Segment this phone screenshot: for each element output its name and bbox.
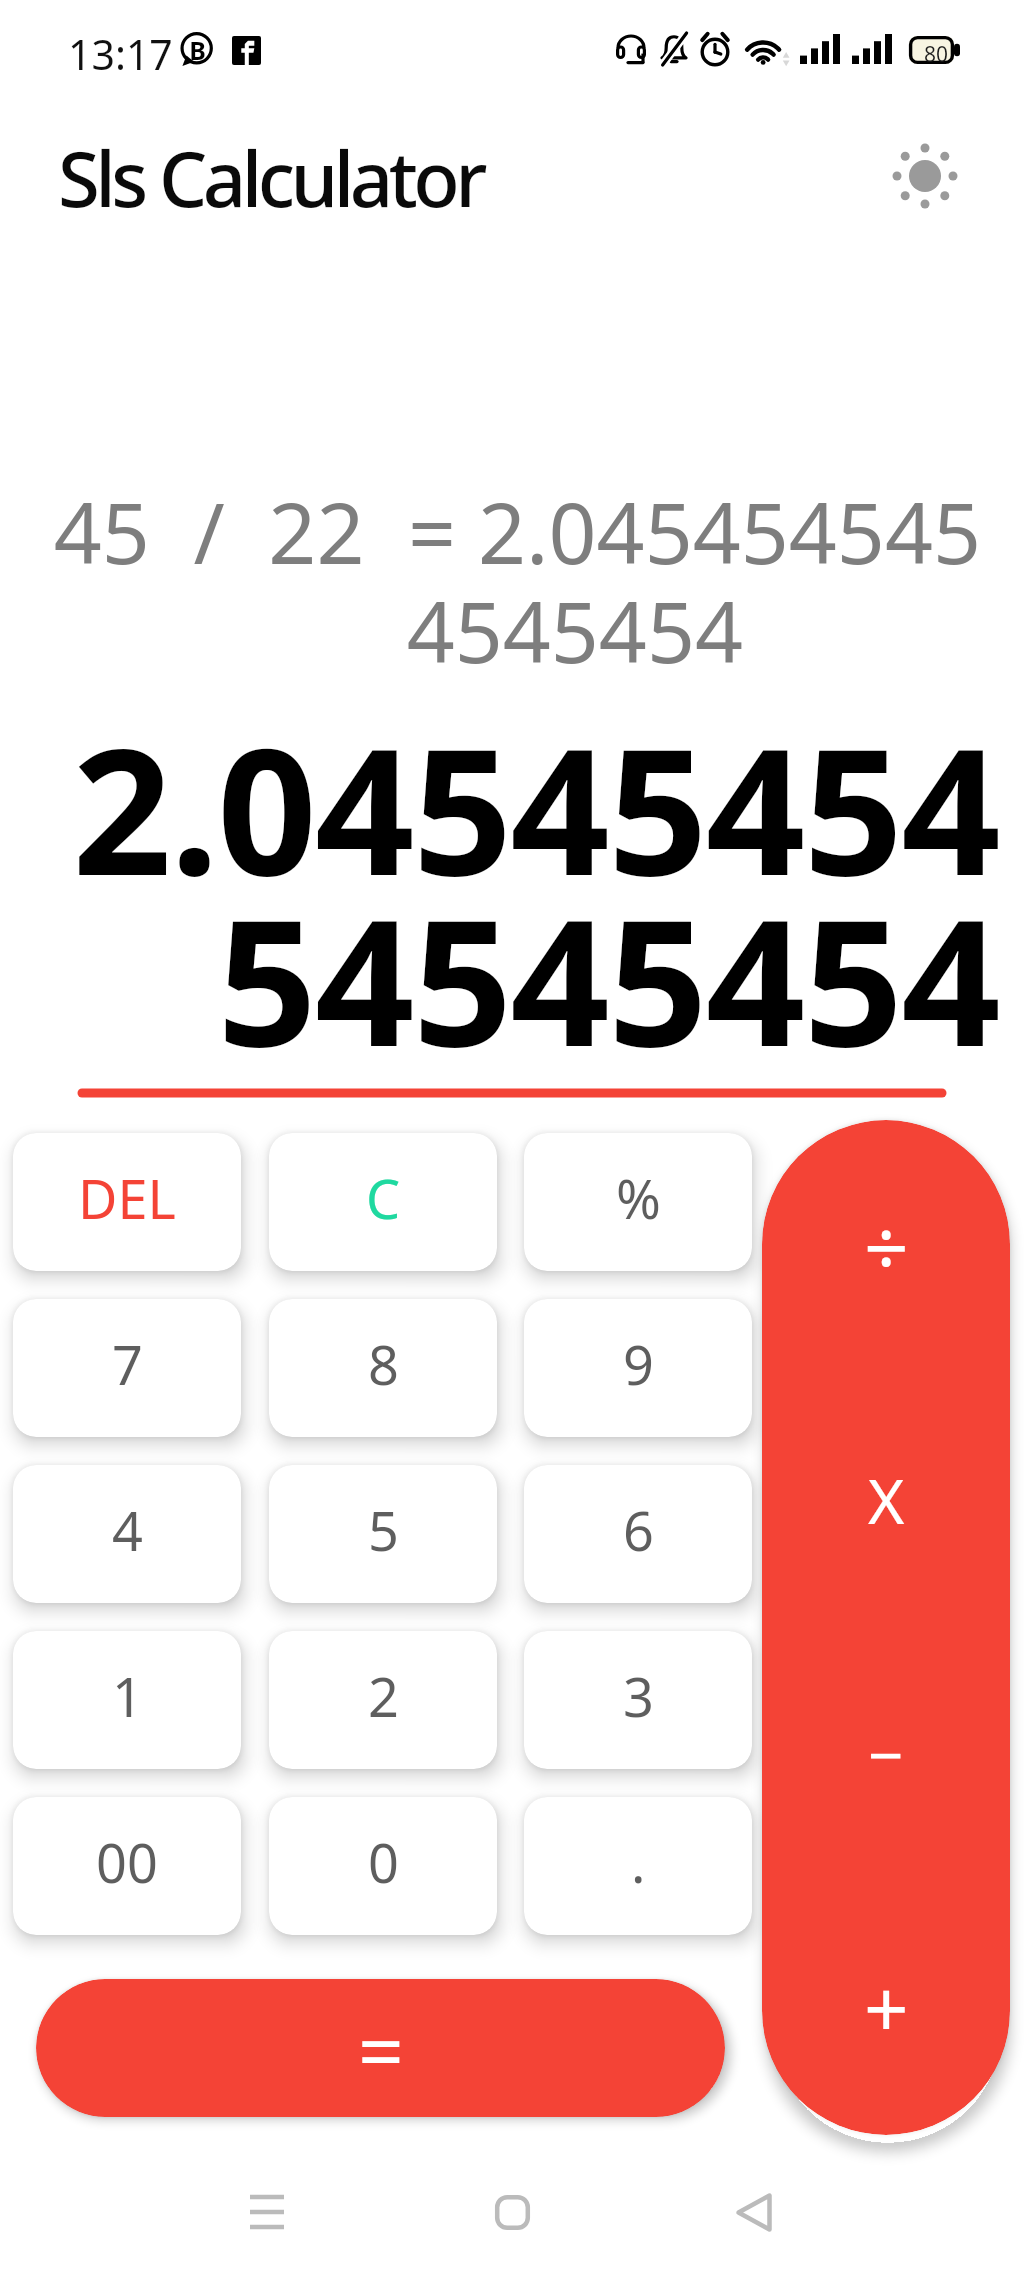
button[interactable]: 3 <box>524 1631 752 1769</box>
staticText: 5 <box>368 1493 399 1567</box>
button[interactable]: DEL <box>13 1133 241 1271</box>
staticText: 45 / 22 = 2.045454545 <box>4 474 981 588</box>
button[interactable]: − <box>762 1627 1010 1881</box>
button[interactable]: % <box>524 1133 752 1271</box>
staticText: 0 <box>368 1825 399 1899</box>
button[interactable]: 9 <box>524 1299 752 1437</box>
staticText: 80 <box>919 40 953 69</box>
button[interactable]: 8 <box>269 1299 497 1437</box>
button[interactable]: 5 <box>269 1465 497 1603</box>
staticText: 6 <box>623 1493 654 1567</box>
staticText: . <box>631 1825 646 1899</box>
staticText: B <box>182 33 213 67</box>
staticText: 54545454 <box>0 860 999 1097</box>
staticText: 00 <box>96 1825 158 1899</box>
button[interactable]: 0 <box>269 1797 497 1935</box>
button[interactable]: 7 <box>13 1299 241 1437</box>
button[interactable]: + <box>762 1881 1010 2135</box>
button[interactable]: Home <box>464 2164 560 2260</box>
staticText: C <box>366 1161 401 1235</box>
staticText: DEL <box>78 1161 176 1235</box>
button[interactable]: ÷ <box>762 1120 1010 1373</box>
button[interactable]: 1 <box>13 1631 241 1769</box>
staticText: % <box>616 1161 661 1235</box>
button[interactable]: 00 <box>13 1797 241 1935</box>
staticText: 9 <box>623 1327 654 1401</box>
staticText: + <box>864 1955 909 2061</box>
staticText: 4545454 <box>2 573 743 687</box>
button[interactable]: 4 <box>13 1465 241 1603</box>
staticText: 2 <box>368 1659 399 1733</box>
button[interactable]: = <box>36 1979 725 2117</box>
staticText: 2.04545454 <box>0 689 999 926</box>
staticText: = <box>358 1994 404 2103</box>
staticText: − <box>868 1712 904 1796</box>
staticText: 7 <box>112 1327 143 1401</box>
staticText: 1 <box>112 1659 143 1733</box>
button[interactable]: 6 <box>524 1465 752 1603</box>
staticText: 3 <box>623 1659 654 1733</box>
staticText: Sls Calculator <box>58 126 483 230</box>
button[interactable]: Recent apps <box>219 2164 315 2260</box>
staticText: 4 <box>112 1493 143 1567</box>
button[interactable]: . <box>524 1797 752 1935</box>
button[interactable]: Back <box>706 2164 802 2260</box>
staticText: X <box>868 1458 905 1542</box>
button[interactable]: Toggle theme <box>870 121 980 231</box>
staticText: 8 <box>368 1327 399 1401</box>
button[interactable]: C <box>269 1133 497 1271</box>
staticText: ÷ <box>864 1194 909 1300</box>
staticText: 13:17 <box>68 26 173 82</box>
button[interactable]: 2 <box>269 1631 497 1769</box>
button[interactable]: X <box>762 1373 1010 1627</box>
